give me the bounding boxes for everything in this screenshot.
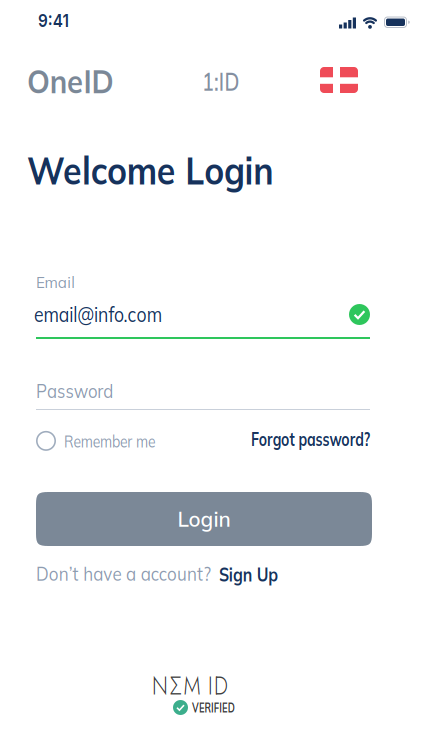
- button[interactable]: OneID: [27, 61, 122, 101]
- staticText: Remember me: [64, 430, 178, 452]
- staticText: Email: [36, 272, 77, 292]
- staticText: Login: [177, 506, 230, 532]
- staticText: Password: [36, 378, 128, 403]
- staticText: OneID: [27, 61, 122, 101]
- staticText: Sign Up: [219, 562, 291, 586]
- staticText: 1:ID: [202, 66, 249, 97]
- staticText: Forgot password?: [251, 426, 421, 451]
- button[interactable]: Don’t have a account?: [36, 562, 228, 585]
- button[interactable]: Forgot password?: [251, 426, 421, 451]
- staticText: N Σ M I D: [152, 668, 241, 704]
- staticText: Welcome Login: [27, 145, 314, 194]
- button[interactable]: Sign Up: [219, 562, 291, 586]
- button[interactable]: [36, 298, 370, 340]
- button[interactable]: Remember me: [36, 430, 178, 452]
- staticText: VERIFIED: [192, 699, 253, 716]
- staticText: email@info.com: [34, 300, 194, 328]
- button[interactable]: [320, 67, 358, 93]
- button[interactable]: Login: [36, 492, 372, 546]
- staticText: Don’t have a account?: [36, 562, 228, 585]
- staticText: 9:41: [38, 9, 76, 32]
- button[interactable]: [36, 374, 370, 410]
